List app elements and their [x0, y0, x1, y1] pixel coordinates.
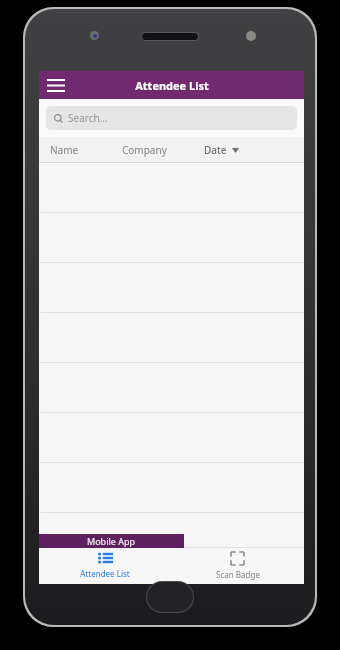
staticText: Search...: [68, 111, 108, 125]
button[interactable]: Mobile App: [39, 534, 184, 548]
staticText: Scan Badge: [216, 569, 260, 580]
button[interactable]: Name: [50, 137, 122, 163]
staticText: Name: [50, 143, 79, 157]
staticText: Attendee List: [135, 78, 209, 93]
button[interactable]: Scan Badge: [171, 548, 304, 584]
staticText: Mobile App: [87, 535, 136, 547]
button[interactable]: Date: [204, 137, 239, 163]
staticText: Date: [204, 143, 227, 157]
button[interactable]: Attendee List: [39, 548, 171, 584]
button[interactable]: Open navigation menu: [39, 71, 73, 99]
button[interactable]: Company: [122, 137, 204, 163]
button[interactable]: Search...: [46, 106, 297, 130]
staticText: Attendee List: [80, 568, 130, 579]
staticText: Company: [122, 143, 167, 157]
button[interactable]: [39, 513, 304, 548]
other: Home: [147, 582, 193, 612]
